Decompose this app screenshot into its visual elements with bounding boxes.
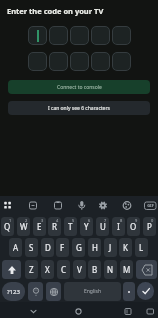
staticText: G — [76, 242, 82, 253]
button[interactable] — [136, 260, 157, 279]
staticText: Enter the code on your TV — [7, 6, 104, 16]
staticText: A — [13, 242, 19, 253]
button[interactable]: I — [112, 217, 125, 236]
staticText: V — [77, 264, 82, 275]
staticText: K — [123, 242, 128, 253]
button[interactable]: V — [73, 260, 86, 279]
staticText: E — [37, 221, 42, 232]
button[interactable]: C — [57, 260, 70, 279]
button[interactable] — [28, 282, 43, 301]
button[interactable]: N — [104, 260, 117, 279]
button[interactable]: I can only see 6 characters — [8, 101, 150, 115]
button[interactable]: H — [88, 238, 101, 257]
staticText: 3 — [41, 218, 44, 223]
button[interactable] — [123, 282, 135, 301]
staticText: I — [117, 221, 120, 232]
staticText: Z — [29, 264, 34, 275]
button[interactable]: Connect to console — [8, 80, 150, 94]
staticText: 2 — [25, 218, 28, 223]
staticText: I can only see 6 characters — [48, 105, 110, 112]
button[interactable]: G — [72, 238, 85, 257]
button[interactable]: K — [119, 238, 132, 257]
button[interactable]: F — [56, 238, 69, 257]
staticText: 4 — [56, 218, 59, 223]
button[interactable]: O — [127, 217, 140, 236]
button[interactable]: E — [33, 217, 46, 236]
button[interactable]: J — [104, 238, 117, 257]
button[interactable] — [46, 282, 61, 301]
staticText: F — [60, 242, 65, 253]
button[interactable]: Q — [1, 217, 14, 236]
button[interactable] — [137, 282, 154, 300]
staticText: 7 — [104, 218, 107, 223]
staticText: 6 — [88, 218, 91, 223]
staticText: English — [84, 288, 102, 295]
staticText: ?123 — [7, 288, 20, 296]
staticText: L — [139, 242, 144, 253]
staticText: X — [45, 264, 50, 275]
staticText: 8 — [120, 218, 123, 223]
button[interactable]: U — [96, 217, 109, 236]
button[interactable]: L — [135, 238, 148, 257]
staticText: T — [68, 221, 73, 232]
button[interactable]: Y — [80, 217, 93, 236]
button[interactable] — [2, 260, 21, 279]
staticText: U — [100, 221, 106, 232]
button[interactable]: English — [64, 282, 121, 301]
staticText: GIF — [146, 203, 155, 210]
staticText: 0 — [151, 218, 154, 223]
staticText: R — [52, 221, 57, 232]
button[interactable]: B — [88, 260, 101, 279]
button[interactable]: D — [41, 238, 54, 257]
staticText: M — [123, 264, 131, 275]
staticText: 1 — [9, 218, 12, 223]
button[interactable]: Z — [25, 260, 38, 279]
button[interactable]: W — [17, 217, 30, 236]
staticText: S — [29, 242, 34, 253]
button[interactable]: S — [25, 238, 38, 257]
staticText: Q — [4, 221, 11, 232]
staticText: P — [147, 221, 152, 232]
button[interactable]: A — [9, 238, 22, 257]
staticText: 5 — [72, 218, 75, 223]
staticText: 9 — [135, 218, 138, 223]
staticText: B — [92, 264, 98, 275]
staticText: N — [107, 264, 114, 275]
button[interactable]: T — [64, 217, 77, 236]
button[interactable]: R — [48, 217, 61, 236]
staticText: J — [109, 242, 112, 253]
staticText: Y — [84, 221, 89, 232]
staticText: O — [130, 221, 137, 232]
staticText: C — [61, 264, 67, 275]
button[interactable]: X — [41, 260, 54, 279]
staticText: Connect to console — [57, 84, 102, 91]
staticText: W — [20, 221, 28, 232]
staticText: H — [92, 242, 98, 253]
button[interactable]: P — [143, 217, 156, 236]
staticText: D — [45, 242, 51, 253]
button[interactable]: ?123 — [2, 282, 25, 301]
button[interactable]: M — [120, 260, 133, 279]
